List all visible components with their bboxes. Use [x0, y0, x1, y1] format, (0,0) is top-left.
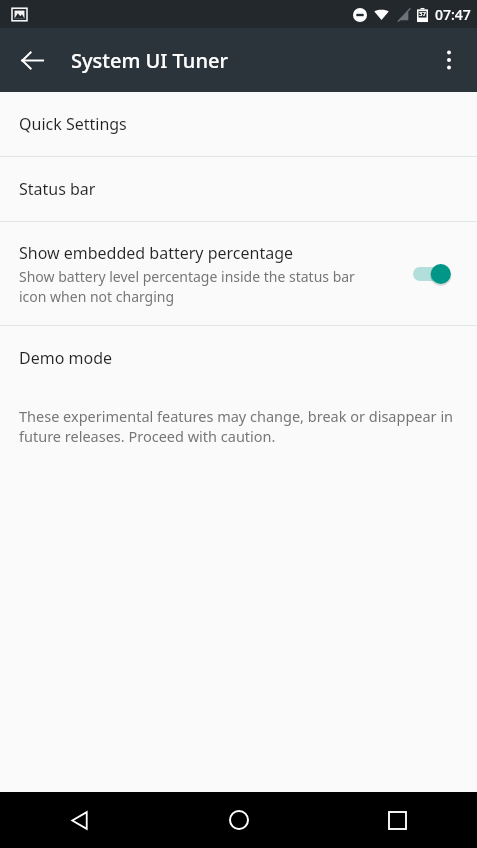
staticText: Quick Settings [19, 113, 127, 135]
staticText: These experimental features may change, … [19, 406, 459, 447]
button[interactable]: Back [0, 792, 159, 848]
staticText: Show embedded battery percentage [19, 242, 294, 264]
button[interactable]: Quick Settings [0, 92, 477, 156]
staticText: Demo mode [19, 347, 113, 369]
button[interactable]: Home [159, 792, 318, 848]
button[interactable]: More options [425, 36, 473, 84]
staticText: 07:47 [435, 5, 471, 24]
staticText: Show battery level percentage inside the… [19, 267, 373, 306]
button[interactable]: Demo mode [0, 326, 477, 390]
button[interactable]: Show embedded battery percentage [0, 222, 477, 325]
button[interactable]: Show embedded battery percentage toggle [413, 257, 463, 291]
staticText: Status bar [19, 178, 96, 200]
button[interactable]: Status bar [0, 157, 477, 221]
button[interactable]: Recent apps [318, 792, 477, 848]
staticText: System UI Tuner [71, 47, 228, 74]
staticText: 37 [419, 10, 426, 18]
button[interactable]: Navigate up [8, 36, 56, 84]
